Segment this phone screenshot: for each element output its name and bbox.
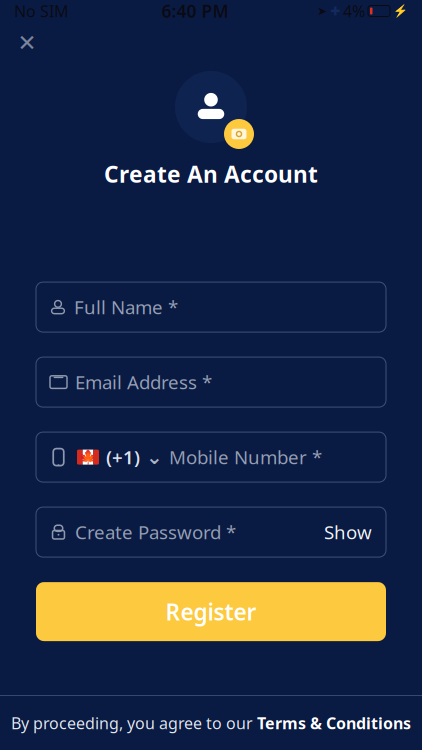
staticText: ⌄ — [146, 446, 163, 468]
button[interactable]: Close — [8, 24, 46, 62]
button[interactable]: Register — [36, 582, 386, 641]
staticText: Mobile Number * — [169, 445, 322, 469]
staticText: Full Name * — [74, 295, 178, 319]
staticText: Show — [324, 520, 372, 544]
staticText: ➤ — [317, 4, 327, 18]
button[interactable]: Change profile photo — [224, 119, 254, 149]
staticText: 6:40 PM — [161, 0, 228, 22]
button[interactable]: Full Name * — [36, 282, 386, 332]
staticText: (+1) — [106, 445, 140, 469]
button[interactable]: Create Password * — [36, 507, 386, 557]
staticText: ✚ — [330, 4, 340, 18]
staticText: Terms & Conditions — [257, 712, 411, 734]
staticText: No SIM — [14, 0, 69, 22]
staticText: By proceeding, you agree to our — [11, 712, 257, 734]
staticText: Email Address * — [75, 370, 212, 394]
staticText: Create An Account — [104, 159, 318, 189]
staticText: ✕ — [17, 30, 36, 56]
staticText: Create Password * — [75, 520, 236, 544]
button[interactable]: By proceeding, you agree to our — [0, 696, 422, 750]
button[interactable]: 🍁 — [36, 432, 386, 482]
button[interactable]: Email Address * — [36, 357, 386, 407]
staticText: 🍁 — [79, 449, 97, 465]
staticText: Register — [165, 597, 256, 627]
staticText: ⚡ — [393, 4, 408, 18]
staticText: 4% — [343, 0, 365, 22]
